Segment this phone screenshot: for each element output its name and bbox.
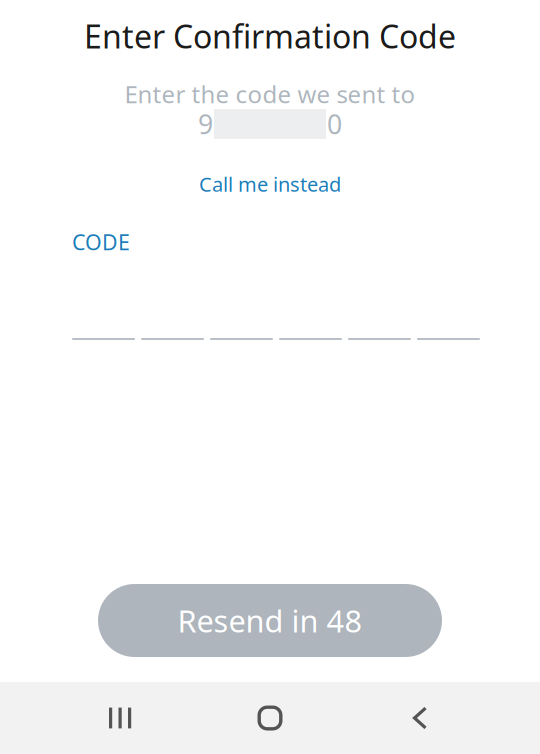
staticText: Call me instead <box>199 171 341 197</box>
staticText: 0 <box>327 106 342 142</box>
staticText: CODE <box>72 228 130 256</box>
button[interactable]: Back <box>375 682 465 754</box>
button[interactable]: Recent apps <box>75 682 165 754</box>
button[interactable]: Resend in 48 <box>98 584 442 657</box>
staticText: Resend in 48 <box>177 600 362 641</box>
staticText: Enter Confirmation Code <box>84 15 456 57</box>
button[interactable]: Confirmation code <box>72 296 480 340</box>
button[interactable]: Home <box>225 682 315 754</box>
staticText: 9 <box>198 106 213 142</box>
staticText: Enter the code we sent to <box>124 78 415 110</box>
button[interactable]: Call me instead <box>189 173 351 195</box>
